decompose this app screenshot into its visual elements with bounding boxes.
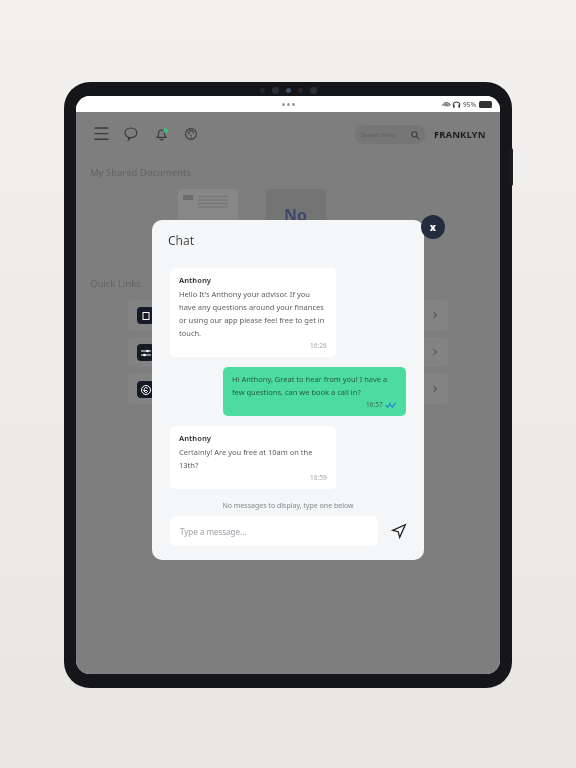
button[interactable]: Documents bbox=[128, 300, 448, 330]
staticText: Search Docs bbox=[361, 131, 396, 139]
staticText: Settings bbox=[163, 347, 194, 358]
staticText: Documents bbox=[163, 310, 207, 321]
staticText: Chat bbox=[168, 232, 195, 248]
button[interactable]: Menu bbox=[90, 123, 112, 145]
button[interactable]: Close chat bbox=[421, 215, 445, 239]
staticText: SJP Wealth Account bbox=[163, 384, 236, 395]
button[interactable]: Notifications bbox=[150, 123, 172, 145]
staticText: No bbox=[284, 204, 308, 226]
staticText: Type a message... bbox=[180, 526, 247, 537]
staticText: Hi Anthony, Great to hear from you! I ha… bbox=[232, 374, 397, 397]
staticText: 16:26 bbox=[310, 341, 327, 350]
staticText: Certainly! Are you free at 10am on the 1… bbox=[179, 447, 327, 470]
button[interactable]: Type a message... bbox=[170, 516, 378, 546]
button[interactable]: Settings bbox=[128, 337, 448, 367]
staticText: My Shared Documents bbox=[90, 166, 191, 179]
staticText: 95% bbox=[463, 100, 476, 109]
button[interactable]: Help bbox=[180, 123, 202, 145]
staticText: 16:57 bbox=[366, 400, 383, 409]
staticText: Anthony bbox=[179, 275, 212, 285]
staticText: No messages to display, type one below bbox=[222, 501, 354, 511]
button[interactable]: Search Docs bbox=[354, 125, 426, 144]
button[interactable]: SJP Wealth Account bbox=[128, 374, 448, 404]
staticText: x bbox=[430, 220, 436, 234]
button[interactable]: Send message bbox=[388, 520, 410, 542]
staticText: 16:59 bbox=[310, 473, 327, 482]
button[interactable]: Messages bbox=[120, 123, 142, 145]
button[interactable]: No bbox=[266, 189, 326, 241]
staticText: Hello It's Anthony your advisor. If you … bbox=[179, 289, 327, 338]
staticText: Quick Links bbox=[90, 277, 141, 290]
button[interactable] bbox=[178, 189, 238, 241]
staticText: Anthony bbox=[179, 433, 212, 443]
staticText: FRANKLYN bbox=[434, 128, 486, 141]
